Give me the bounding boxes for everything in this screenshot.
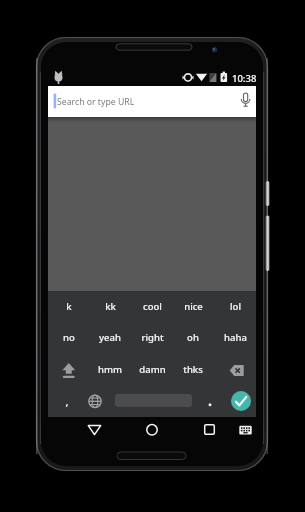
button[interactable]: damn	[131, 358, 173, 380]
staticText: yeah	[99, 331, 121, 344]
staticText: nice	[184, 300, 203, 313]
button[interactable]: kk	[89, 295, 131, 317]
button[interactable]	[234, 419, 257, 441]
staticText: right	[141, 331, 164, 344]
button[interactable]: k	[48, 295, 90, 317]
staticText: 10:38	[232, 72, 257, 85]
button[interactable]	[84, 391, 106, 412]
staticText: k	[66, 300, 72, 313]
button[interactable]: haha	[214, 326, 256, 348]
staticText: hmm	[98, 363, 122, 376]
button[interactable]	[48, 86, 256, 117]
button[interactable]	[56, 359, 82, 381]
staticText: kk	[105, 300, 116, 313]
button[interactable]: lol	[214, 295, 256, 317]
staticText: haha	[224, 331, 247, 344]
staticText: thks	[183, 363, 203, 376]
staticText: ,	[65, 394, 69, 409]
button[interactable]: hmm	[89, 358, 131, 380]
staticText: Search or type URL	[57, 96, 135, 108]
button[interactable]: no	[48, 326, 90, 348]
button[interactable]: ,	[46, 390, 88, 412]
button[interactable]	[195, 419, 224, 441]
staticText: cool	[143, 300, 162, 313]
button[interactable]: oh	[172, 326, 214, 348]
button[interactable]	[231, 391, 251, 411]
button[interactable]: yeah	[89, 326, 131, 348]
button[interactable]	[80, 419, 109, 441]
button[interactable]: nice	[172, 295, 214, 317]
staticText: no	[63, 331, 75, 344]
button[interactable]: right	[131, 326, 173, 348]
button[interactable]: thks	[172, 358, 214, 380]
staticText: damn	[139, 363, 166, 376]
button[interactable]	[224, 359, 250, 381]
staticText: lol	[230, 300, 241, 313]
staticText: oh	[187, 331, 199, 344]
button[interactable]	[137, 419, 166, 441]
button[interactable]	[200, 391, 220, 412]
button[interactable]: cool	[131, 295, 173, 317]
